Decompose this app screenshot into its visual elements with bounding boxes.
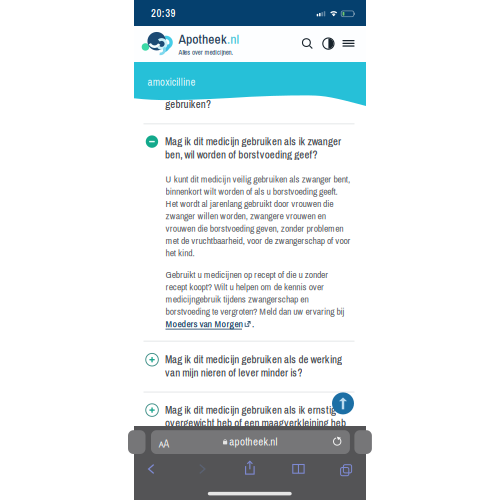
- button[interactable]: Contrast: [323, 38, 334, 49]
- staticText: 20:39: [151, 6, 176, 20]
- staticText: Apotheek: [179, 30, 227, 48]
- staticText: zwanger willen worden, zwangere vrouwen …: [166, 209, 326, 222]
- button[interactable]: Terug: [147, 464, 155, 474]
- staticText: vrouwen die borstvoeding geven, zonder p…: [166, 222, 343, 235]
- staticText: recept koopt? Wilt u helpen om de kennis…: [166, 280, 324, 293]
- staticText: Mag ik dit medicijn gebruiken als ik ern…: [165, 403, 336, 417]
- staticText: Mag ik dit medicijn gebruiken als ik zwa…: [165, 134, 341, 149]
- button[interactable]: Zoeken: [302, 39, 313, 49]
- staticText: apotheek.nl: [229, 434, 278, 449]
- staticText: gebruiken?: [165, 97, 211, 111]
- button[interactable]: Moeders van Morgen: [165, 317, 257, 331]
- button[interactable]: Tabbladen: [339, 463, 350, 474]
- staticText: .: [252, 317, 254, 330]
- button[interactable]: Bladwijzers: [292, 464, 305, 474]
- button[interactable]: Deel: [245, 461, 255, 475]
- button[interactable]: Menu: [342, 40, 355, 46]
- staticText: Het wordt al jarenlang gebruikt door vro…: [166, 197, 333, 210]
- button[interactable]: Mag ik dit medicijn gebruiken als ik zwa…: [146, 134, 357, 160]
- staticText: medicijngebruik tijdens zwangerschap en: [166, 293, 308, 305]
- staticText: ben, wil worden of borstvoeding geef?: [165, 147, 317, 162]
- staticText: amoxicilline: [147, 75, 195, 89]
- staticText: overgewicht heb of een maagverkleining h…: [165, 416, 346, 430]
- button[interactable]: Mag ik dit medicijn gebruiken als de wer…: [146, 352, 357, 378]
- staticText: borstvoeding te vergroten? Meld dan uw e…: [166, 305, 345, 318]
- staticText: binnenkort wilt worden of als u borstvoe…: [166, 185, 338, 198]
- staticText: Mag ik dit medicijn gebruiken als de wer…: [165, 352, 342, 367]
- staticText: Gebruikt u medicijnen op recept of die u…: [166, 268, 328, 281]
- button[interactable]: Vooruit: [198, 464, 206, 474]
- staticText: van mijn nieren of lever minder is?: [165, 365, 302, 380]
- staticText: .nl: [227, 30, 240, 48]
- staticText: Alles over medicijnen.: [179, 48, 233, 57]
- staticText: met de vruchtbaarheid, voor de zwangersc…: [166, 234, 351, 247]
- staticText: U kunt dit medicijn veilig gebruiken als…: [166, 172, 350, 185]
- staticText: Moeders van Morgen: [165, 317, 243, 330]
- staticText: het kind.: [166, 246, 194, 259]
- staticText: ᴀA: [158, 436, 170, 451]
- button[interactable]: ᴀA: [151, 430, 350, 454]
- button[interactable]: Mag ik dit medicijn gebruiken als ik ern…: [146, 403, 357, 429]
- button[interactable]: Naar boven: [332, 392, 354, 414]
